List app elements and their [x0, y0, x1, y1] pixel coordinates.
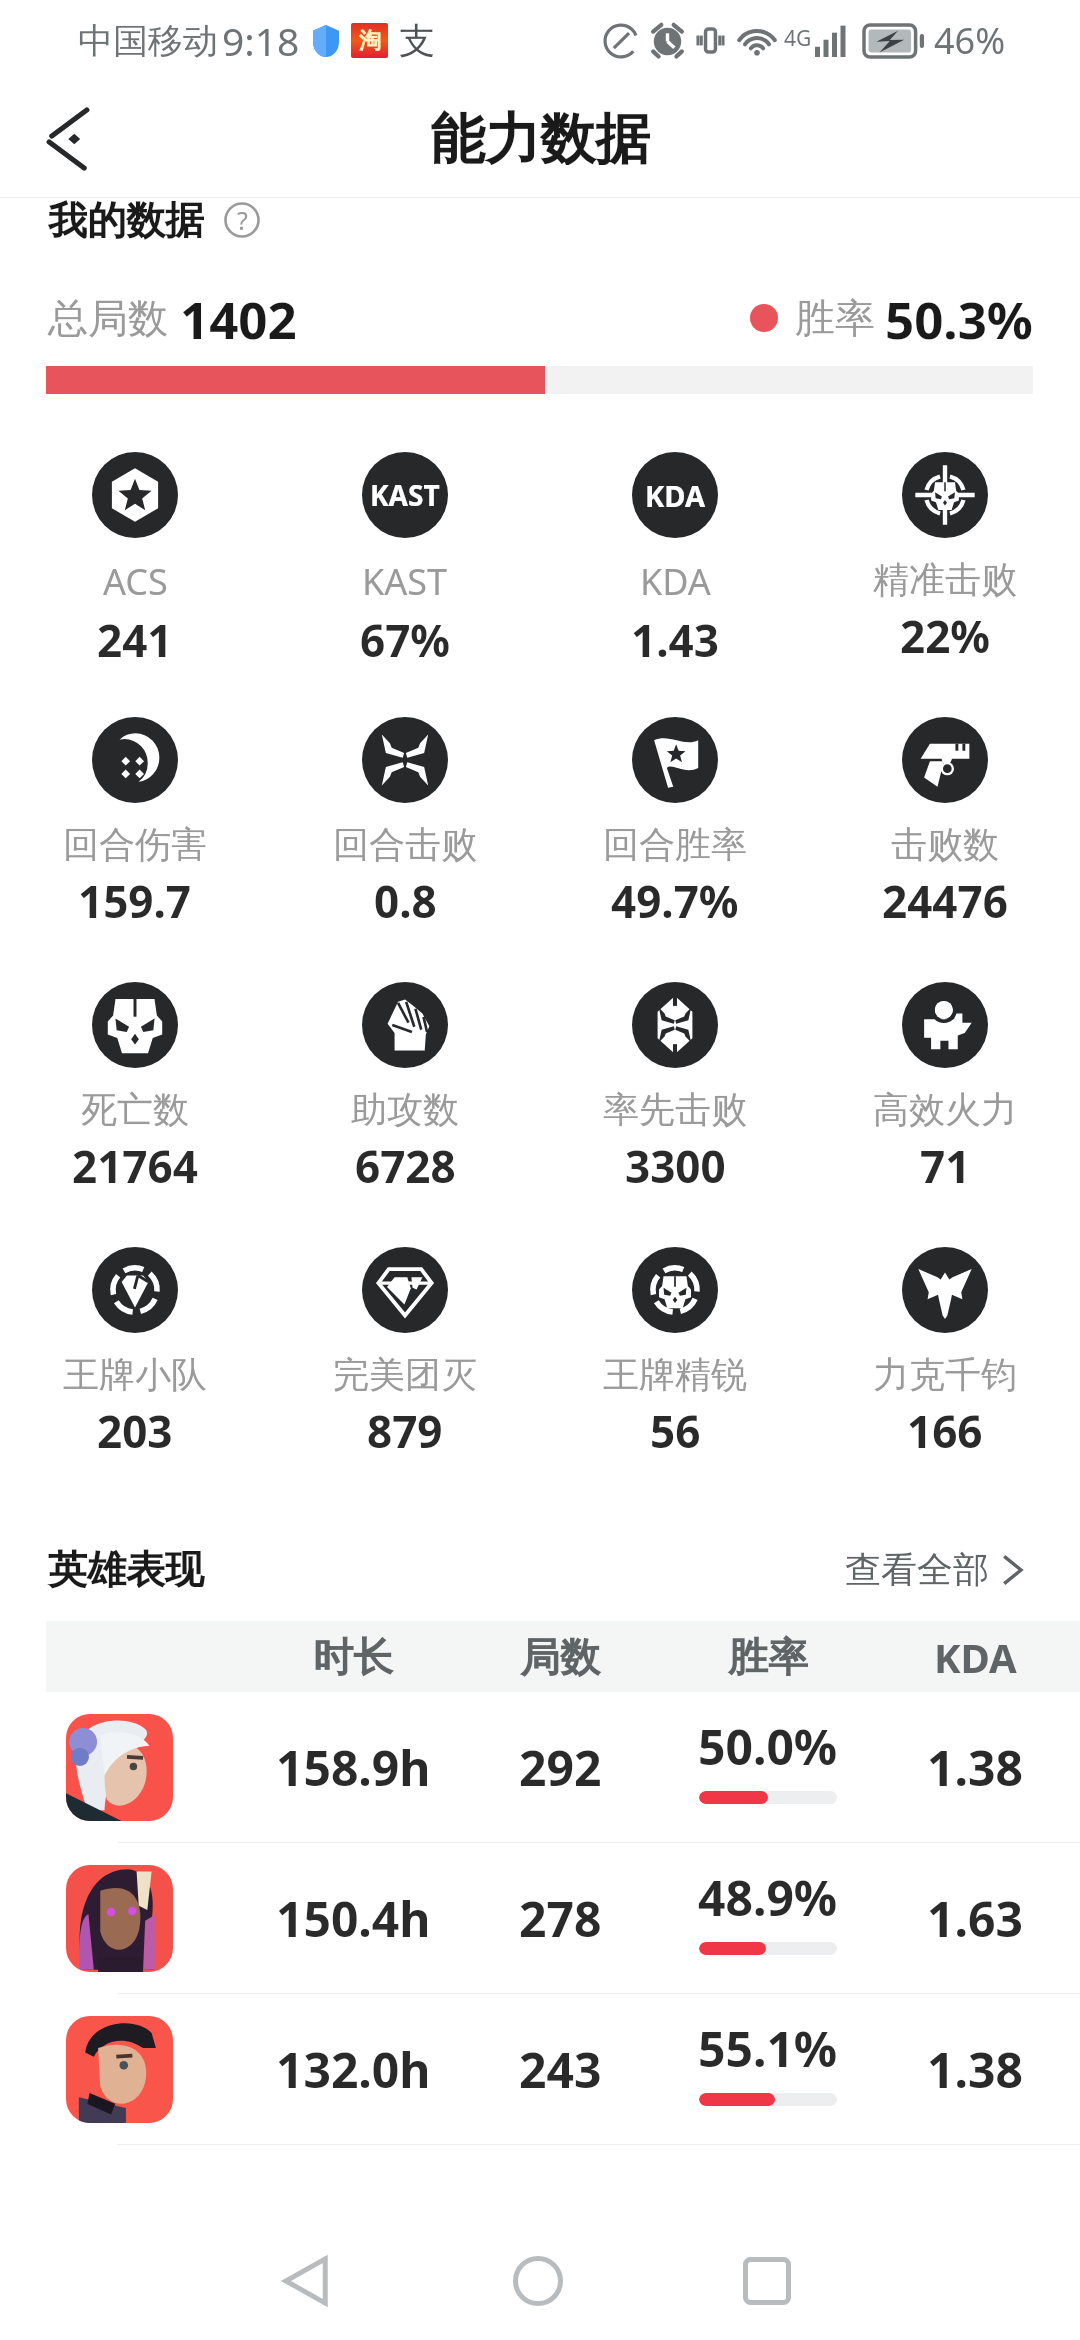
- button[interactable]: 死亡数: [0, 931, 270, 1196]
- button[interactable]: Recents: [697, 2211, 837, 2340]
- staticText: 150.4h: [276, 1886, 431, 1951]
- staticText: 查看全部: [845, 1547, 989, 1592]
- staticText: KDA: [640, 557, 711, 606]
- button[interactable]: Home: [468, 2211, 608, 2340]
- staticText: 278: [519, 1886, 602, 1951]
- staticText: 50.3%: [885, 284, 1033, 353]
- staticText: ACS: [103, 557, 168, 606]
- staticText: 9:18: [222, 14, 300, 67]
- staticText: 王牌精锐: [603, 1352, 747, 1397]
- button[interactable]: 回合胜率: [540, 666, 810, 931]
- button[interactable]: Back: [22, 94, 112, 184]
- staticText: 完美团灭: [333, 1352, 477, 1397]
- staticText: 英雄表现: [48, 1545, 204, 1594]
- staticText: 48.9%: [698, 1865, 838, 1930]
- staticText: KAST: [362, 557, 448, 606]
- button[interactable]: 击败数: [810, 666, 1080, 931]
- staticText: 22%: [900, 606, 991, 666]
- staticText: 3300: [625, 1136, 726, 1196]
- button[interactable]: 回合击败: [270, 666, 540, 931]
- staticText: 166: [907, 1401, 983, 1461]
- staticText: KDA: [934, 1630, 1017, 1684]
- button[interactable]: 助攻数: [270, 931, 540, 1196]
- staticText: 4G: [784, 24, 812, 53]
- staticText: 王牌小队: [63, 1352, 207, 1397]
- staticText: 高效火力: [873, 1087, 1017, 1132]
- staticText: 回合伤害: [63, 822, 207, 867]
- staticText: 击败数: [891, 822, 999, 867]
- staticText: 1402: [180, 284, 297, 353]
- button[interactable]: 力克千钧: [810, 1196, 1080, 1461]
- staticText: 胜率: [795, 293, 875, 343]
- button[interactable]: 完美团灭: [270, 1196, 540, 1461]
- staticText: 879: [367, 1401, 443, 1461]
- staticText: 0.8: [374, 871, 437, 931]
- staticText: 67%: [360, 610, 451, 670]
- staticText: 回合胜率: [603, 822, 747, 867]
- staticText: 1.63: [927, 1886, 1023, 1951]
- staticText: 胜率: [728, 1632, 808, 1682]
- staticText: 我的数据: [48, 196, 204, 244]
- button[interactable]: 精准击败: [810, 401, 1080, 666]
- staticText: 49.7%: [611, 871, 739, 931]
- staticText: 能力数据: [430, 105, 650, 165]
- button[interactable]: Back: [237, 2211, 377, 2340]
- staticText: 55.1%: [698, 2016, 838, 2081]
- staticText: 力克千钧: [873, 1352, 1017, 1397]
- button[interactable]: ACS: [0, 401, 270, 666]
- button[interactable]: KAST: [270, 401, 540, 666]
- staticText: 率先击败: [603, 1087, 747, 1132]
- staticText: 56: [650, 1401, 701, 1461]
- staticText: 精准击败: [873, 557, 1017, 602]
- button[interactable]: 查看全部: [845, 1547, 1033, 1592]
- button[interactable]: KDA: [540, 401, 810, 666]
- staticText: 241: [97, 610, 173, 670]
- staticText: 50.0%: [698, 1714, 838, 1779]
- staticText: 局数: [520, 1632, 600, 1682]
- staticText: 1.43: [631, 610, 719, 670]
- staticText: 203: [97, 1401, 173, 1461]
- staticText: 总局数: [48, 293, 168, 343]
- staticText: ?: [237, 203, 248, 237]
- staticText: 死亡数: [81, 1087, 189, 1132]
- staticText: 158.9h: [276, 1735, 431, 1800]
- staticText: 159.7: [78, 871, 192, 931]
- staticText: 时长: [313, 1632, 393, 1682]
- button[interactable]: 王牌小队: [0, 1196, 270, 1461]
- button[interactable]: 132.0h: [0, 1994, 1080, 2144]
- staticText: 132.0h: [276, 2037, 431, 2102]
- button[interactable]: 率先击败: [540, 931, 810, 1196]
- staticText: 1.38: [927, 1735, 1023, 1800]
- button[interactable]: Help: [220, 198, 264, 242]
- button[interactable]: 150.4h: [0, 1843, 1080, 1993]
- staticText: 1.38: [927, 2037, 1023, 2102]
- staticText: KDA: [645, 476, 705, 515]
- staticText: 回合击败: [333, 822, 477, 867]
- staticText: 中国移动: [78, 19, 218, 63]
- button[interactable]: 回合伤害: [0, 666, 270, 931]
- staticText: 支: [399, 18, 435, 63]
- staticText: 6728: [355, 1136, 456, 1196]
- staticText: 46%: [934, 16, 1006, 65]
- button[interactable]: 158.9h: [0, 1692, 1080, 1842]
- button[interactable]: 高效火力: [810, 931, 1080, 1196]
- button[interactable]: 王牌精锐: [540, 1196, 810, 1461]
- staticText: 71: [920, 1136, 971, 1196]
- staticText: 助攻数: [351, 1087, 459, 1132]
- staticText: 淘: [359, 27, 381, 55]
- staticText: 24476: [882, 871, 1008, 931]
- staticText: 292: [519, 1735, 602, 1800]
- staticText: 243: [519, 2037, 602, 2102]
- staticText: KAST: [370, 476, 440, 514]
- staticText: 21764: [72, 1136, 198, 1196]
